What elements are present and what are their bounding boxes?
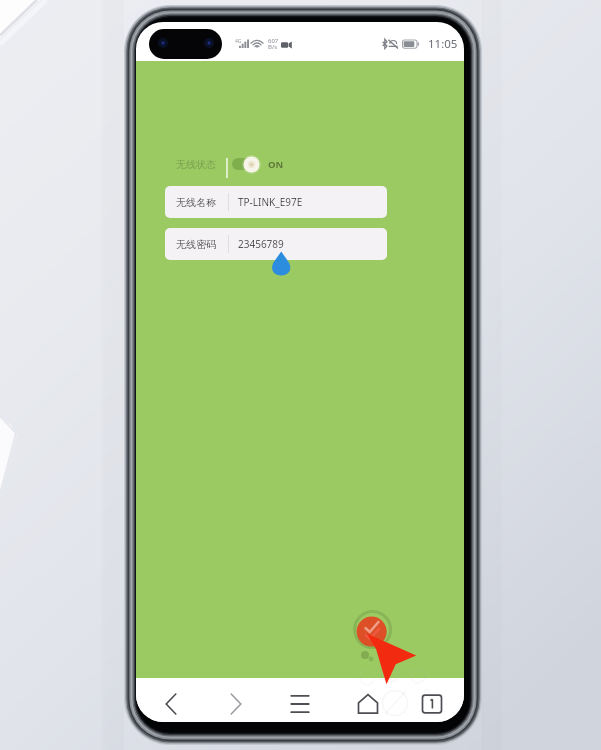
button[interactable]: Forward [215,683,257,722]
button[interactable]: Home [347,683,389,722]
button[interactable] [232,158,257,170]
staticText: TP-LINK_E97E [238,195,303,209]
staticText: B/s [268,43,278,51]
staticText: ON [268,158,284,171]
button[interactable]: Back [150,683,192,722]
staticText: 无线状态 [176,158,216,171]
staticText: 607 [268,37,279,45]
button[interactable]: 无线密码 [165,228,387,260]
button[interactable]: Tabs [411,683,453,722]
staticText: 11:05 [428,36,458,52]
button[interactable]: Menu [279,683,321,722]
staticText: 4G [235,38,242,45]
staticText: 无线密码 [176,238,217,251]
staticText: 无线名称 [176,196,217,209]
staticText: 23456789 [238,237,284,251]
button[interactable]: Confirm [357,617,387,647]
button[interactable]: 无线名称 [165,186,387,218]
